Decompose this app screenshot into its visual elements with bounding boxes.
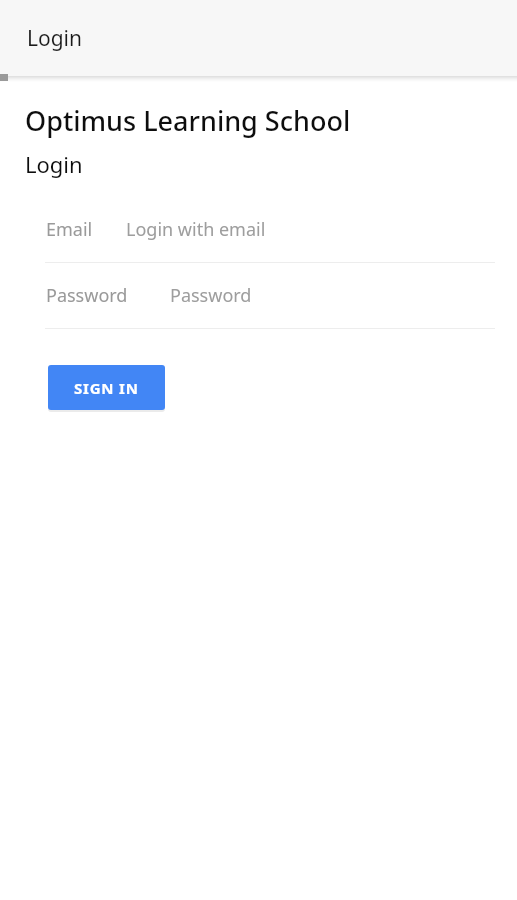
staticText: Login with email — [126, 217, 266, 242]
staticText: Password — [46, 283, 170, 308]
staticText: Optimus Learning School — [25, 102, 351, 139]
button[interactable]: Email — [0, 217, 517, 263]
staticText: Login — [25, 149, 83, 179]
button[interactable]: SIGN IN — [48, 365, 165, 410]
staticText: Password — [170, 283, 252, 308]
button[interactable]: Password — [0, 283, 517, 329]
staticText: SIGN IN — [74, 378, 139, 398]
staticText: Email — [46, 217, 126, 242]
staticText: Login — [27, 24, 83, 53]
